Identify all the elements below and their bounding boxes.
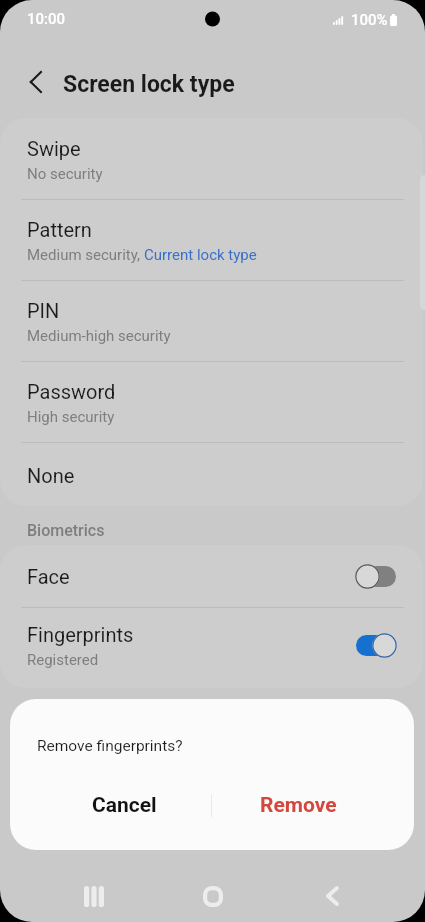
button[interactable]: Remove (212, 781, 414, 829)
button[interactable]: Fingerprints (0, 607, 423, 688)
staticText: Registered (27, 651, 99, 669)
staticText: High security (27, 408, 115, 426)
staticText: Remove fingerprints? (37, 737, 183, 755)
button[interactable]: None (0, 442, 423, 506)
staticText: Medium-high security (27, 327, 171, 345)
staticText: Screen lock type (63, 71, 235, 98)
staticText: Cancel (92, 793, 157, 818)
button[interactable]: Password (0, 361, 423, 442)
button[interactable]: Swipe (0, 118, 423, 199)
button[interactable]: Home (173, 868, 253, 922)
staticText: Password (27, 380, 116, 403)
button[interactable]: PIN (0, 280, 423, 361)
button[interactable]: Cancel (10, 781, 211, 829)
staticText: 10:00 (27, 10, 66, 28)
staticText: None (27, 464, 75, 487)
staticText: PIN (27, 299, 60, 322)
staticText: Biometrics (27, 521, 105, 540)
staticText: 100% (351, 11, 388, 29)
staticText: Medium security, (27, 246, 144, 264)
button[interactable]: Pattern (0, 199, 423, 280)
button[interactable]: On (356, 633, 396, 658)
staticText: Swipe (27, 137, 81, 160)
button[interactable]: Back (292, 868, 372, 922)
staticText: No security (27, 165, 103, 183)
button[interactable]: Navigate up (14, 61, 56, 103)
button[interactable]: Off (356, 564, 396, 589)
button[interactable]: Face (0, 545, 423, 607)
staticText: Fingerprints (27, 623, 134, 646)
staticText: Remove (260, 793, 337, 818)
staticText: Current lock type (144, 246, 257, 264)
button[interactable]: Recent apps (54, 868, 134, 922)
staticText: Pattern (27, 218, 92, 241)
staticText: Face (27, 565, 70, 588)
